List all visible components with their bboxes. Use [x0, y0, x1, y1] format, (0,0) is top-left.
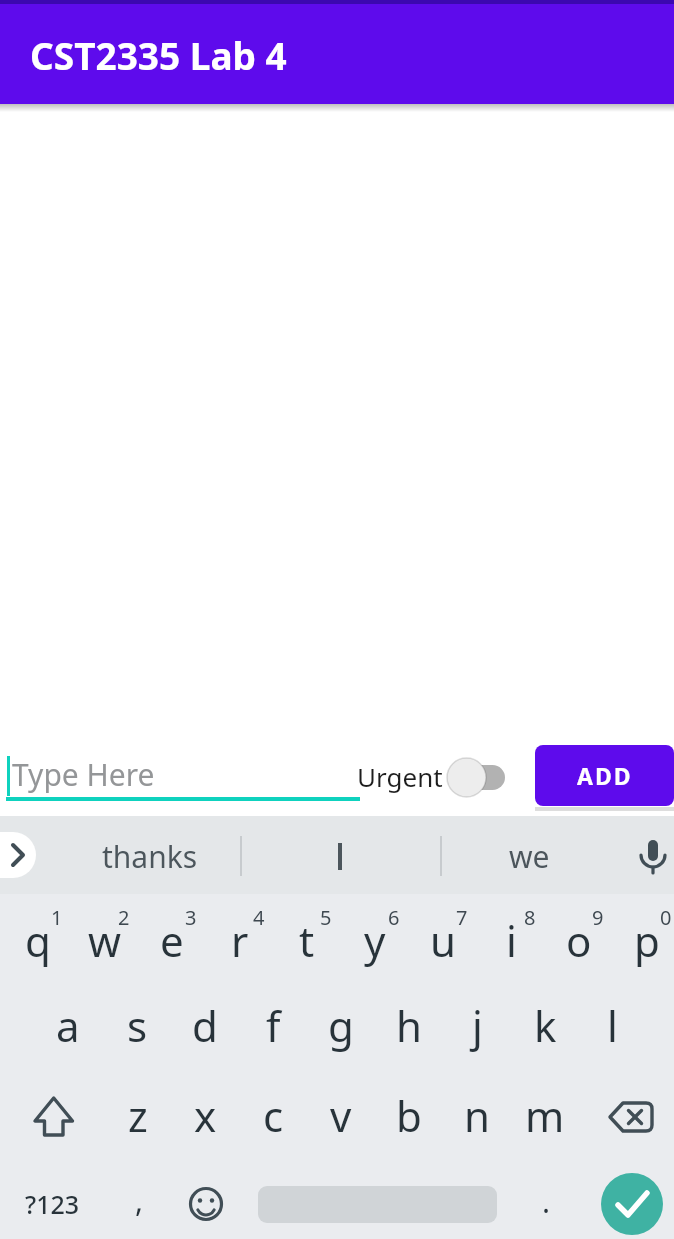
button[interactable]: . [526, 1176, 566, 1226]
staticText: w [88, 912, 122, 969]
staticText: 4 [253, 904, 265, 928]
staticText: we [509, 836, 550, 876]
staticText: f [266, 997, 281, 1054]
staticText: , [135, 1180, 144, 1221]
button[interactable]: q [6, 908, 70, 972]
button[interactable]: e [140, 908, 204, 972]
button[interactable]: c [241, 1083, 305, 1147]
staticText: b [396, 1087, 422, 1144]
staticText: 5 [320, 904, 332, 928]
staticText: x [194, 1087, 217, 1144]
button[interactable]: thanks [65, 836, 235, 876]
button[interactable] [601, 1173, 663, 1235]
staticText: s [127, 997, 148, 1054]
staticText: 2 [118, 904, 130, 928]
button[interactable]: a [36, 993, 100, 1057]
button[interactable]: r [208, 908, 272, 972]
staticText: q [25, 912, 51, 969]
button[interactable]: w [73, 908, 137, 972]
button[interactable]: d [173, 993, 237, 1057]
staticText: e [160, 912, 184, 969]
button[interactable] [280, 836, 400, 876]
button[interactable]: u [411, 908, 475, 972]
staticText: k [534, 997, 557, 1054]
button[interactable]: k [513, 993, 577, 1057]
button[interactable]: p [615, 908, 674, 972]
staticText: o [566, 912, 592, 969]
staticText: thanks [102, 836, 198, 876]
button[interactable] [603, 1099, 657, 1137]
button[interactable]: i [479, 908, 543, 972]
button[interactable]: ?123 [12, 1179, 92, 1229]
button[interactable]: t [275, 908, 339, 972]
button[interactable]: m [513, 1083, 577, 1147]
button[interactable]: v [309, 1083, 373, 1147]
staticText: Type Here [12, 754, 155, 795]
staticText: 1 [51, 904, 63, 928]
button[interactable]: Type Here [12, 752, 155, 796]
button[interactable] [455, 765, 505, 790]
staticText: a [56, 997, 80, 1054]
button[interactable] [187, 1185, 225, 1223]
button[interactable]: z [106, 1083, 170, 1147]
button[interactable]: l [580, 993, 644, 1057]
staticText: CST2335 Lab 4 [30, 30, 287, 78]
staticText: t [299, 912, 315, 969]
button[interactable]: f [241, 993, 305, 1057]
staticText: h [396, 997, 422, 1054]
button[interactable]: b [377, 1083, 441, 1147]
button[interactable]: s [105, 993, 169, 1057]
button[interactable] [29, 1092, 77, 1138]
button[interactable]: ADD [535, 745, 674, 806]
button[interactable]: , [119, 1175, 159, 1225]
button[interactable]: g [309, 993, 373, 1057]
staticText: j [472, 997, 483, 1054]
staticText: g [328, 997, 354, 1054]
button[interactable] [637, 836, 669, 878]
staticText: r [231, 912, 249, 969]
staticText: p [634, 912, 660, 969]
staticText: 6 [388, 904, 400, 928]
staticText: 7 [456, 904, 468, 928]
staticText: 3 [185, 904, 197, 928]
button[interactable]: h [377, 993, 441, 1057]
staticText: y [364, 912, 386, 969]
staticText: c [263, 1087, 284, 1144]
button[interactable]: n [445, 1083, 509, 1147]
staticText: l [607, 997, 618, 1054]
button[interactable]: we [469, 836, 589, 876]
staticText: ADD [577, 760, 633, 791]
staticText: u [430, 912, 456, 969]
staticText: m [525, 1087, 565, 1144]
staticText: 0 [660, 904, 672, 928]
staticText: v [330, 1087, 352, 1144]
button[interactable]: o [547, 908, 611, 972]
staticText: Urgent [357, 759, 443, 793]
staticText: 8 [524, 904, 536, 928]
button[interactable]: j [445, 993, 509, 1057]
button[interactable]: y [343, 908, 407, 972]
button[interactable]: x [173, 1083, 237, 1147]
staticText: i [506, 912, 517, 969]
staticText: z [128, 1087, 148, 1144]
staticText: 9 [592, 904, 604, 928]
staticText: n [464, 1087, 490, 1144]
staticText: ?123 [25, 1187, 80, 1221]
staticText: . [542, 1181, 551, 1222]
staticText: d [192, 997, 218, 1054]
button[interactable] [0, 832, 36, 878]
